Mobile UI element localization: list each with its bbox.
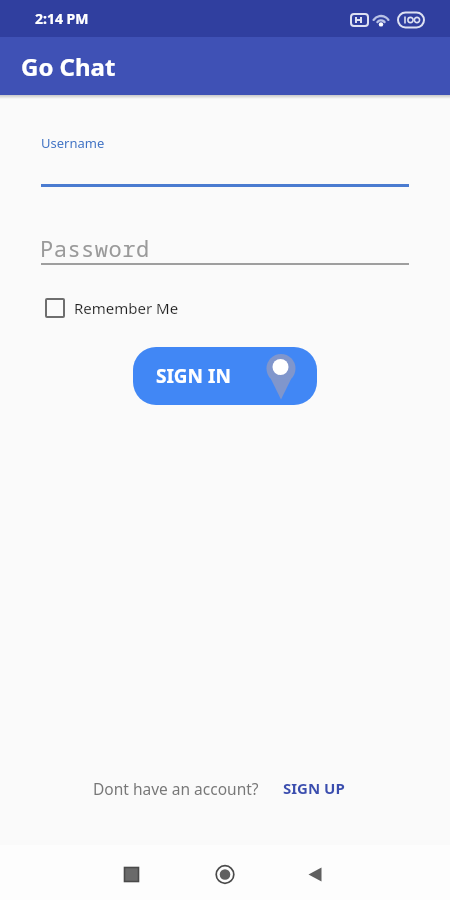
staticText: 2:14 PM bbox=[35, 9, 89, 28]
staticText: Remember Me bbox=[74, 298, 179, 318]
staticText: Go Chat bbox=[21, 50, 116, 83]
button[interactable]: Remember Me bbox=[45, 298, 179, 318]
button[interactable]: SIGN UP bbox=[283, 778, 345, 798]
staticText: Username bbox=[41, 134, 105, 152]
button[interactable]: SIGN IN bbox=[133, 347, 317, 405]
staticText: Dont have an account? bbox=[93, 778, 259, 799]
staticText: Password bbox=[40, 233, 150, 263]
staticText: SIGN IN bbox=[156, 363, 231, 389]
